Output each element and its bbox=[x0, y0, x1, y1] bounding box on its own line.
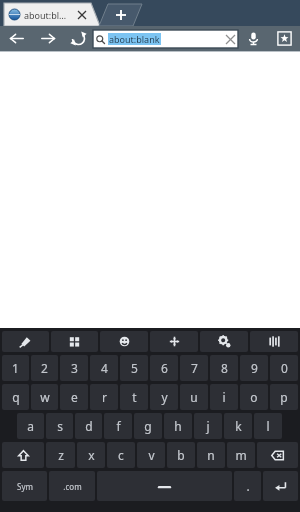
button[interactable]: r bbox=[90, 384, 118, 410]
staticText: 4 bbox=[101, 360, 108, 376]
button[interactable]: 0 bbox=[270, 355, 298, 381]
staticText: 1 bbox=[12, 360, 19, 376]
staticText: u bbox=[190, 389, 198, 405]
button[interactable]: Voice search bbox=[238, 26, 269, 51]
staticText: g bbox=[144, 418, 152, 434]
button[interactable]: Sym bbox=[2, 471, 47, 501]
button[interactable]: Reload bbox=[64, 26, 93, 51]
button[interactable]: Move keyboard bbox=[150, 331, 198, 352]
staticText: . bbox=[246, 478, 250, 494]
button[interactable]: x bbox=[77, 442, 105, 468]
staticText: .com bbox=[63, 481, 82, 492]
staticText: 9 bbox=[251, 360, 258, 376]
button[interactable]: 8 bbox=[210, 355, 238, 381]
staticText: z bbox=[58, 447, 64, 463]
button[interactable]: . bbox=[234, 471, 261, 501]
button[interactable]: c bbox=[107, 442, 135, 468]
staticText: f bbox=[116, 418, 121, 434]
staticText: 0 bbox=[281, 360, 288, 376]
staticText: a bbox=[27, 418, 34, 434]
button[interactable]: a bbox=[17, 413, 44, 439]
button[interactable]: q bbox=[2, 384, 29, 410]
button[interactable]: 5 bbox=[120, 355, 148, 381]
staticText: l bbox=[266, 418, 270, 434]
staticText: d bbox=[85, 418, 93, 434]
button[interactable]: l bbox=[254, 413, 282, 439]
staticText: q bbox=[12, 389, 20, 405]
staticText: b bbox=[177, 447, 185, 463]
button[interactable]: p bbox=[270, 384, 298, 410]
button[interactable]: Settings bbox=[200, 331, 248, 352]
button[interactable]: d bbox=[75, 413, 102, 439]
button[interactable]: t bbox=[120, 384, 148, 410]
staticText: n bbox=[207, 447, 215, 463]
button[interactable]: s bbox=[46, 413, 73, 439]
staticText: r bbox=[102, 389, 107, 405]
staticText: 3 bbox=[71, 360, 78, 376]
button[interactable]: 1 bbox=[2, 355, 29, 381]
button[interactable]: about:blank bbox=[93, 30, 238, 48]
button[interactable]: 4 bbox=[90, 355, 118, 381]
staticText: about:blank bbox=[109, 33, 160, 45]
staticText: Sym bbox=[17, 481, 33, 492]
staticText: v bbox=[148, 447, 155, 463]
button[interactable]: Backspace bbox=[257, 442, 298, 468]
button[interactable]: .com bbox=[49, 471, 95, 501]
staticText: 6 bbox=[161, 360, 168, 376]
button[interactable]: about:bl… bbox=[4, 3, 100, 26]
button[interactable]: Close tab bbox=[75, 8, 89, 22]
staticText: k bbox=[235, 418, 242, 434]
button[interactable]: v bbox=[137, 442, 165, 468]
staticText: w bbox=[40, 389, 50, 405]
button[interactable]: m bbox=[227, 442, 255, 468]
button[interactable]: Handwriting bbox=[2, 331, 49, 352]
button[interactable]: b bbox=[167, 442, 195, 468]
button[interactable]: j bbox=[194, 413, 222, 439]
button[interactable]: h bbox=[164, 413, 192, 439]
staticText: 2 bbox=[41, 360, 48, 376]
staticText: t bbox=[132, 389, 137, 405]
button[interactable]: Enter bbox=[263, 471, 298, 501]
button[interactable]: New tab bbox=[99, 4, 143, 26]
button[interactable]: u bbox=[180, 384, 208, 410]
staticText: s bbox=[57, 418, 63, 434]
staticText: 5 bbox=[131, 360, 138, 376]
button[interactable]: 7 bbox=[180, 355, 208, 381]
staticText: x bbox=[88, 447, 95, 463]
button[interactable]: i bbox=[210, 384, 238, 410]
button[interactable]: 6 bbox=[150, 355, 178, 381]
staticText: 8 bbox=[221, 360, 228, 376]
staticText: i bbox=[222, 389, 226, 405]
button[interactable]: k bbox=[224, 413, 252, 439]
button[interactable]: Bookmark bbox=[269, 26, 300, 51]
button[interactable]: 3 bbox=[60, 355, 88, 381]
button[interactable]: Space bbox=[97, 471, 232, 501]
staticText: 7 bbox=[191, 360, 198, 376]
staticText: about:bl… bbox=[24, 9, 67, 21]
button[interactable]: 9 bbox=[240, 355, 268, 381]
button[interactable]: w bbox=[31, 384, 58, 410]
button[interactable]: z bbox=[46, 442, 75, 468]
staticText: j bbox=[206, 418, 210, 434]
button[interactable]: Keyboard layout bbox=[51, 331, 98, 352]
button[interactable]: e bbox=[60, 384, 88, 410]
staticText: m bbox=[235, 447, 247, 463]
staticText: e bbox=[71, 389, 78, 405]
button[interactable]: o bbox=[240, 384, 268, 410]
button[interactable]: f bbox=[104, 413, 132, 439]
staticText: h bbox=[174, 418, 182, 434]
staticText: p bbox=[280, 389, 288, 405]
button[interactable]: n bbox=[197, 442, 225, 468]
staticText: y bbox=[161, 389, 168, 405]
button[interactable]: Back bbox=[0, 26, 33, 51]
button[interactable]: Theme bbox=[250, 331, 298, 352]
button[interactable]: y bbox=[150, 384, 178, 410]
button[interactable]: Shift bbox=[2, 442, 44, 468]
button[interactable]: Forward bbox=[33, 26, 64, 51]
button[interactable]: 2 bbox=[31, 355, 58, 381]
button[interactable]: g bbox=[134, 413, 162, 439]
staticText: c bbox=[118, 447, 124, 463]
staticText: o bbox=[250, 389, 258, 405]
button[interactable]: Emoji bbox=[100, 331, 148, 352]
